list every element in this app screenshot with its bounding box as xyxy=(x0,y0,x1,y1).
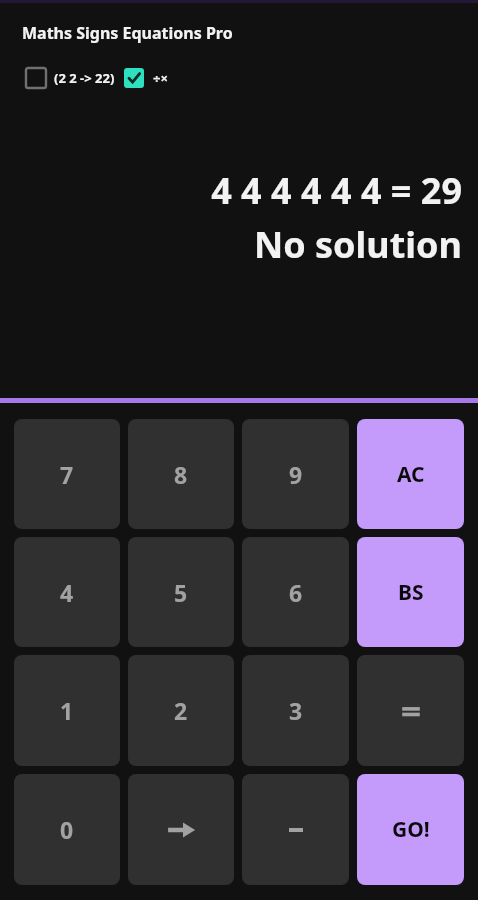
staticText: 9 xyxy=(289,459,303,490)
staticText: (2 2 -> 22) xyxy=(54,69,115,87)
staticText: AC xyxy=(397,460,425,489)
staticText: 4 4 4 4 4 4 = 29 xyxy=(0,166,462,215)
staticText: Maths Signs Equations Pro xyxy=(22,22,233,44)
staticText: 2 xyxy=(174,695,188,726)
button[interactable]: BS xyxy=(357,537,464,647)
staticText: ÷× xyxy=(153,69,168,87)
staticText: 5 xyxy=(174,577,188,608)
button[interactable]: 5 xyxy=(128,537,234,647)
button[interactable]: 4 xyxy=(14,537,120,647)
staticText: 7 xyxy=(60,459,74,490)
button[interactable]: Next xyxy=(128,774,234,885)
button[interactable]: 7 xyxy=(14,419,120,529)
button[interactable]: Allow divide and multiply option xyxy=(124,68,144,88)
button[interactable]: 1 xyxy=(14,655,120,766)
button[interactable]: 6 xyxy=(242,537,349,647)
staticText: 4 xyxy=(60,577,74,608)
button[interactable]: 3 xyxy=(242,655,349,766)
button[interactable]: 0 xyxy=(14,774,120,885)
staticText: 0 xyxy=(60,814,74,845)
staticText: GO! xyxy=(392,815,430,844)
button[interactable]: 8 xyxy=(128,419,234,529)
button[interactable]: 9 xyxy=(242,419,349,529)
button[interactable]: 2 xyxy=(128,655,234,766)
button[interactable]: Equals xyxy=(357,655,464,766)
staticText: 3 xyxy=(289,695,303,726)
button[interactable]: Minus xyxy=(242,774,349,885)
staticText: BS xyxy=(398,578,424,607)
button[interactable]: AC xyxy=(357,419,464,529)
button[interactable]: GO! xyxy=(357,774,464,885)
staticText: 6 xyxy=(289,577,303,608)
staticText: 8 xyxy=(174,459,188,490)
button[interactable]: Allow joining digits option xyxy=(26,68,46,88)
staticText: No solution xyxy=(0,220,462,269)
staticText: 1 xyxy=(60,695,74,726)
